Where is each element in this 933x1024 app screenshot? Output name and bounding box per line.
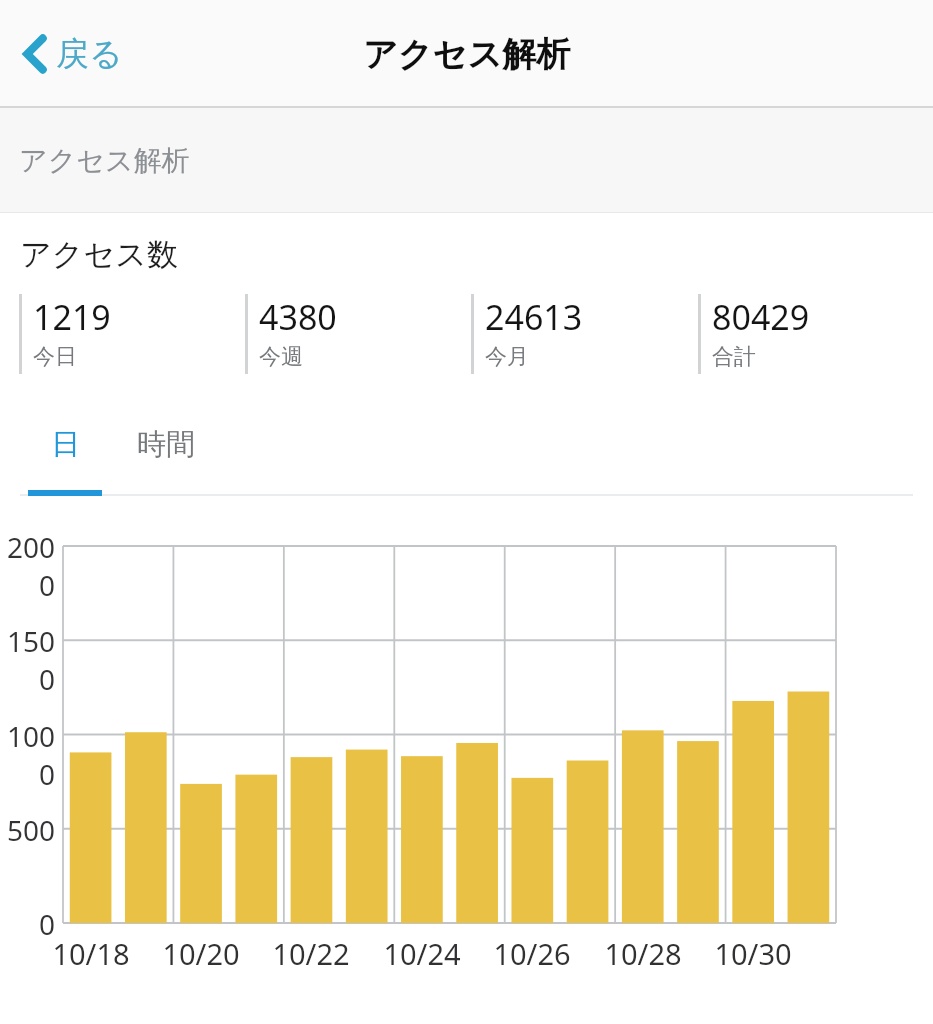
staticText: アクセス数 [20,235,178,274]
staticText: 10/24 [362,934,482,973]
staticText: 500 [0,811,55,849]
staticText: 4380 [259,294,337,340]
staticText: 1000 [0,717,55,793]
button[interactable]: 戻る [14,21,131,87]
staticText: 今日 [33,343,77,371]
button[interactable]: 80429 [698,294,925,374]
staticText: 時間 [137,426,195,463]
staticText: 10/28 [583,934,703,973]
staticText: 24613 [485,294,583,340]
staticText: 2000 [0,528,55,604]
staticText: 10/30 [693,934,813,973]
staticText: 戻る [56,33,123,75]
button[interactable]: 4380 [245,294,471,374]
button[interactable]: 時間 [108,418,223,496]
staticText: 10/18 [31,934,151,973]
staticText: アクセス解析 [19,143,190,178]
staticText: 1219 [33,294,111,340]
button[interactable]: 日 [22,418,108,496]
staticText: 日 [51,426,80,463]
staticText: 合計 [712,343,756,371]
staticText: 0 [0,905,55,943]
staticText: 今月 [485,343,529,371]
staticText: 1500 [0,622,55,698]
button[interactable]: 24613 [471,294,698,374]
staticText: 10/20 [141,934,261,973]
staticText: 80429 [712,294,810,340]
staticText: 10/22 [251,934,371,973]
staticText: 今週 [259,343,303,371]
button[interactable]: 1219 [19,294,245,374]
staticText: 10/26 [472,934,592,973]
staticText: アクセス解析 [363,33,571,76]
